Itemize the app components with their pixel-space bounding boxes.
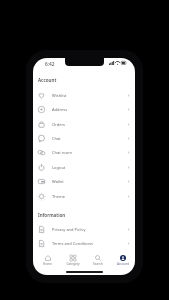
- staticText: Account: [38, 77, 57, 83]
- button[interactable]: Chat: [33, 131, 135, 145]
- button[interactable]: Terms and Conditions: [33, 236, 135, 250]
- button[interactable]: Category: [60, 253, 85, 267]
- button[interactable]: Orders: [33, 117, 135, 131]
- button[interactable]: Theme: [33, 189, 135, 203]
- staticText: Theme: [52, 194, 65, 199]
- staticText: Chat room: [52, 150, 72, 155]
- button[interactable]: Address: [33, 102, 135, 116]
- staticText: Category: [66, 262, 80, 266]
- staticText: Search: [93, 262, 103, 266]
- button[interactable]: Wishlist: [33, 88, 135, 102]
- button[interactable]: Account: [110, 253, 135, 267]
- button[interactable]: Privacy and Policy: [33, 222, 135, 236]
- staticText: 6:42: [45, 61, 55, 68]
- staticText: Logout: [52, 165, 66, 170]
- staticText: Chat: [52, 136, 61, 141]
- staticText: Wallet: [52, 179, 64, 184]
- button[interactable]: Logout: [33, 160, 135, 174]
- staticText: Wishlist: [52, 93, 67, 98]
- staticText: Orders: [52, 122, 65, 127]
- staticText: Account: [117, 262, 129, 266]
- staticText: Home: [43, 262, 52, 266]
- button[interactable]: Search: [85, 253, 110, 267]
- button[interactable]: Wallet: [33, 174, 135, 188]
- staticText: Privacy and Policy: [52, 227, 86, 232]
- staticText: Address: [52, 107, 68, 112]
- staticText: Information: [38, 212, 66, 218]
- button[interactable]: Chat room: [33, 145, 135, 159]
- button[interactable]: Home: [35, 253, 60, 267]
- staticText: Terms and Conditions: [52, 241, 93, 246]
